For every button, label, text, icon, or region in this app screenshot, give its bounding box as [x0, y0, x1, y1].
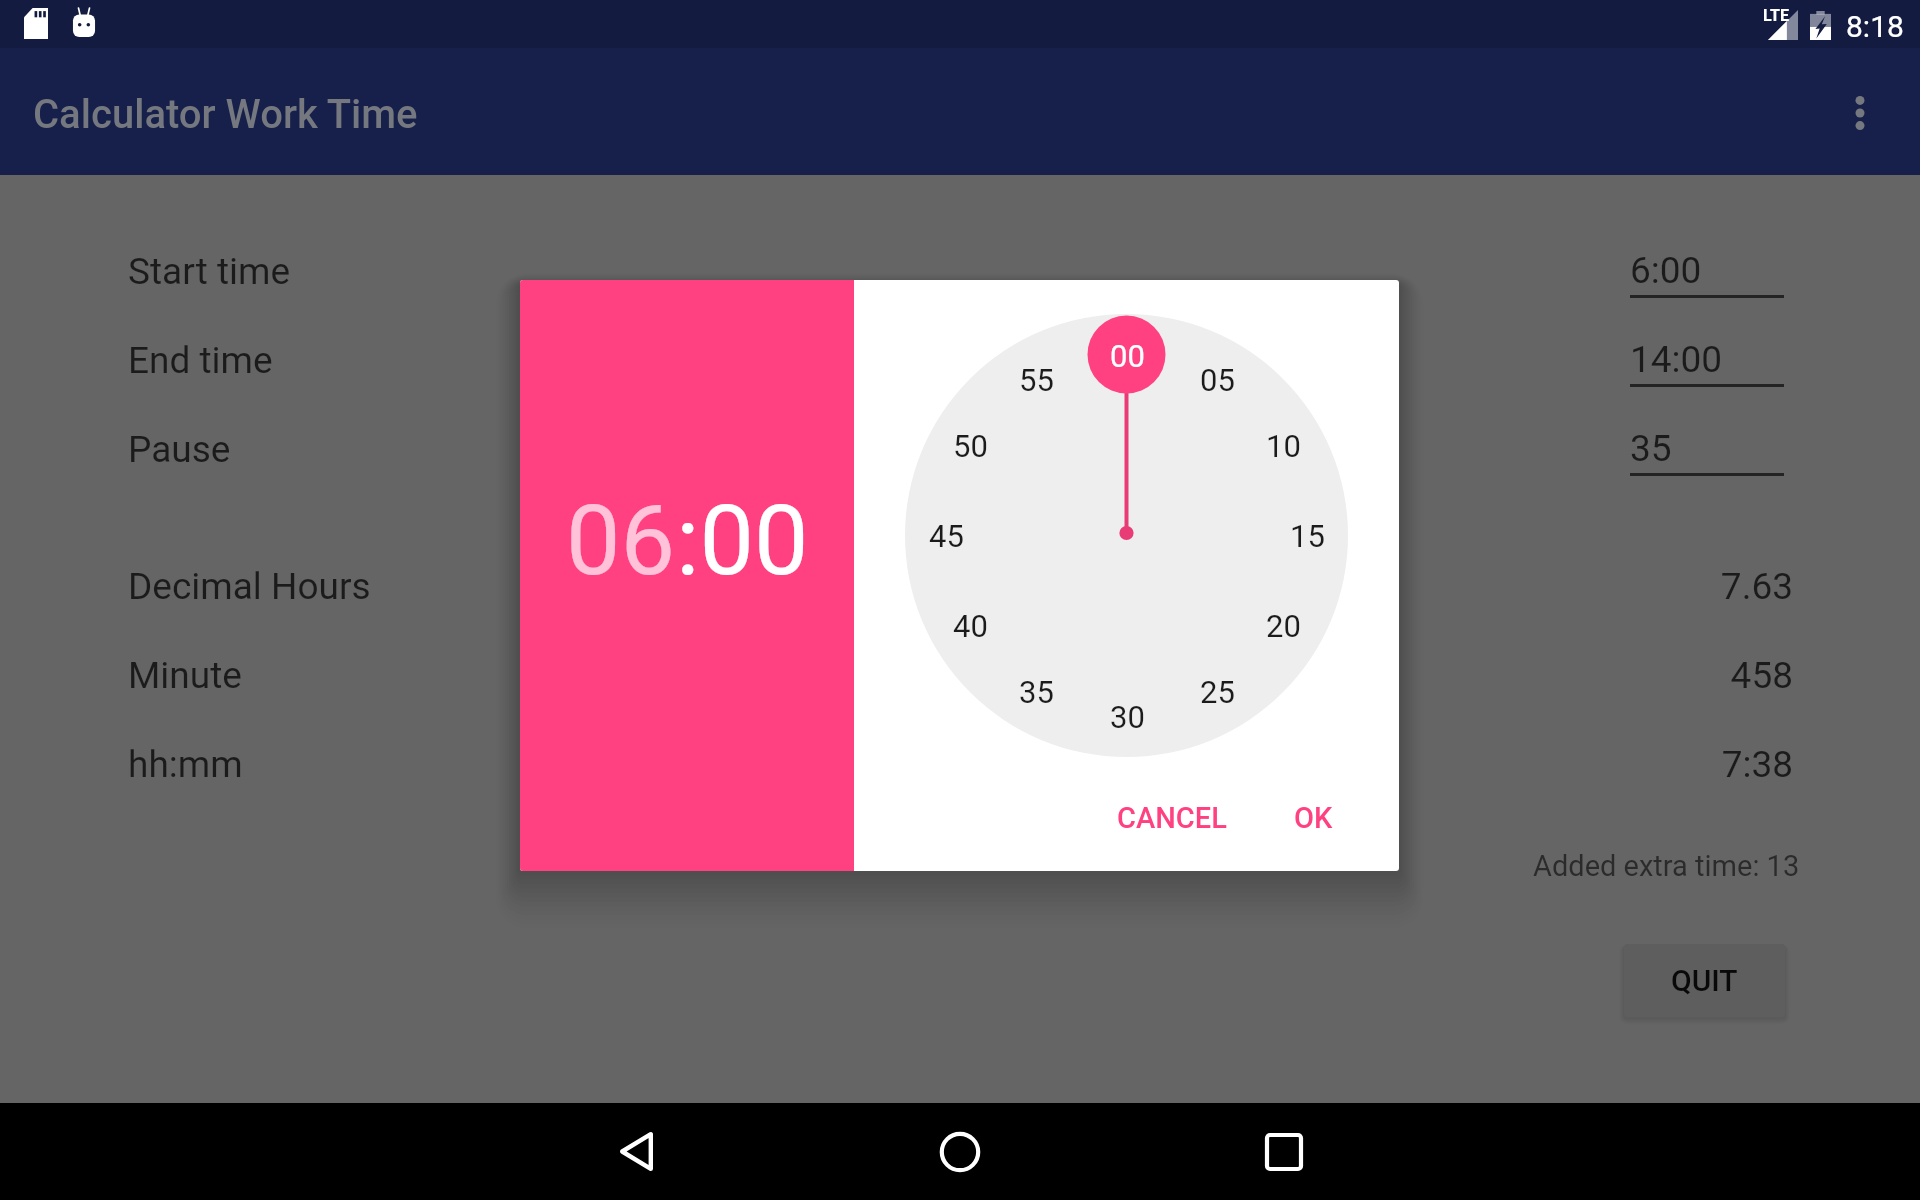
staticText: 40 [953, 608, 988, 644]
staticText: 35 [1630, 427, 1672, 470]
button[interactable]: CANCEL [1099, 787, 1245, 849]
staticText: Pause [128, 428, 231, 471]
button[interactable]: Recent apps [1239, 1103, 1329, 1200]
staticText: 14:00 [1630, 338, 1723, 381]
button[interactable]: 30 [1087, 689, 1167, 745]
staticText: 45 [929, 518, 964, 554]
staticText: hh:mm [128, 743, 243, 786]
staticText: 15 [1290, 518, 1325, 554]
button[interactable]: 15 [1267, 508, 1347, 564]
button[interactable]: 55 [996, 352, 1076, 408]
staticText: 6:00 [1630, 249, 1702, 292]
button[interactable]: 14:00 [1630, 325, 1784, 387]
button[interactable]: 45 [906, 508, 986, 564]
button[interactable]: 10 [1243, 418, 1323, 474]
staticText: 7.63 [1720, 565, 1793, 608]
button[interactable]: 50 [930, 418, 1010, 474]
button[interactable]: Pause [120, 414, 520, 484]
staticText: 20 [1266, 608, 1301, 644]
staticText: 05 [1200, 362, 1235, 398]
button[interactable]: Back [591, 1103, 681, 1200]
staticText: 55 [1019, 362, 1054, 398]
staticText: 00 [1110, 338, 1145, 374]
button[interactable]: :00 [676, 484, 809, 598]
staticText: 8:18 [1846, 9, 1904, 44]
button[interactable]: 06 [566, 484, 676, 598]
button[interactable]: 6:00 [1630, 236, 1784, 298]
button[interactable]: More options [1832, 84, 1888, 140]
staticText: 30 [1110, 699, 1145, 735]
staticText: LTE [1763, 6, 1789, 25]
staticText: 10 [1266, 428, 1301, 464]
staticText: End time [128, 339, 273, 382]
button[interactable]: 35 [1630, 414, 1784, 476]
button[interactable]: OK [1276, 787, 1351, 849]
button[interactable]: Start time [120, 236, 520, 306]
button[interactable]: 40 [930, 598, 1010, 654]
staticText: 7:38 [1721, 743, 1793, 786]
staticText: 25 [1200, 674, 1235, 710]
button[interactable]: QUIT [1624, 944, 1785, 1017]
button[interactable]: 35 [996, 664, 1076, 720]
button[interactable]: End time [120, 325, 520, 395]
button[interactable]: 05 [1177, 352, 1257, 408]
staticText: CANCEL [1117, 801, 1227, 835]
button[interactable]: Home [915, 1103, 1005, 1200]
staticText: Added extra time: 13 [1533, 849, 1800, 883]
staticText: QUIT [1671, 963, 1738, 998]
button[interactable]: 25 [1177, 664, 1257, 720]
staticText: OK [1294, 801, 1333, 835]
staticText: 50 [953, 428, 988, 464]
staticText: Start time [128, 250, 291, 293]
staticText: Calculator Work Time [33, 91, 418, 138]
staticText: 458 [1730, 654, 1793, 697]
button[interactable]: 00 [1087, 328, 1167, 384]
staticText: Minute [128, 654, 242, 697]
staticText: Decimal Hours [128, 565, 371, 608]
staticText: 35 [1019, 674, 1054, 710]
button[interactable]: 20 [1243, 598, 1323, 654]
